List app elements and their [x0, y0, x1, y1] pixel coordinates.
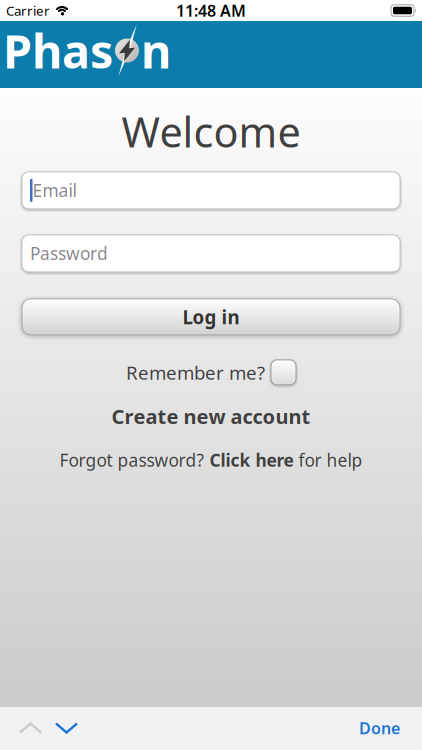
button[interactable]: Previous field	[20, 723, 41, 733]
staticText: Forgot password?	[59, 448, 209, 471]
button[interactable]: Done	[359, 717, 400, 739]
staticText: Done	[359, 717, 400, 739]
button[interactable]: Create new account	[111, 403, 310, 429]
button[interactable]: Email	[0, 172, 422, 209]
staticText: Remember me?	[126, 360, 265, 385]
button[interactable]: Next field	[56, 723, 77, 733]
staticText: n	[141, 19, 171, 81]
staticText: 11:48 AM	[176, 0, 246, 21]
staticText: Password	[30, 242, 108, 265]
button[interactable]: Password	[0, 235, 422, 272]
staticText: Welcome	[121, 104, 300, 159]
staticText: Log in	[182, 304, 239, 329]
button[interactable]: Forgot password?	[59, 448, 362, 471]
staticText: Click here	[209, 448, 293, 471]
staticText: for help	[293, 448, 362, 471]
staticText: Phas	[3, 19, 113, 81]
button[interactable]: Log in	[0, 299, 422, 335]
staticText: Email	[32, 179, 76, 202]
staticText: Create new account	[111, 403, 310, 429]
staticText: Carrier	[6, 2, 50, 19]
button[interactable]: Remember me	[271, 360, 296, 385]
